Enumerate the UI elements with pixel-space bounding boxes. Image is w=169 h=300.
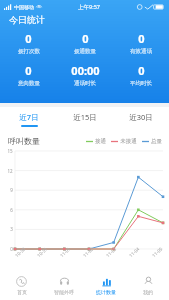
staticText: 0 xyxy=(25,31,32,46)
staticText: 00:00 xyxy=(71,63,100,78)
staticText: 拨打次数 xyxy=(18,48,40,55)
staticText: 6 xyxy=(10,207,13,213)
staticText: 9 xyxy=(10,187,13,193)
staticText: 我的 xyxy=(143,289,153,295)
staticText: 总量 xyxy=(151,138,162,145)
staticText: 今日统计 xyxy=(9,14,45,25)
staticText: 15 xyxy=(7,148,13,154)
staticText: 平均时长 xyxy=(130,80,152,87)
button[interactable]: 首页 xyxy=(0,270,43,300)
staticText: 意向数量 xyxy=(18,80,40,87)
staticText: 上午9:57 xyxy=(78,3,100,11)
staticText: 未接通 xyxy=(120,138,137,145)
staticText: 0 xyxy=(25,63,32,78)
button[interactable]: 智能外呼 xyxy=(43,270,85,300)
staticText: 中国移动 xyxy=(14,4,34,10)
staticText: 0 xyxy=(138,63,145,78)
button[interactable]: 近15日 xyxy=(57,107,113,132)
button[interactable]: 近7日 xyxy=(0,107,57,132)
staticText: 10-30 xyxy=(13,246,26,258)
staticText: 11-01 xyxy=(58,246,71,258)
staticText: 3 xyxy=(10,226,13,232)
staticText: 通话时长 xyxy=(74,80,96,87)
staticText: 有效通话 xyxy=(130,48,152,55)
staticText: 11-03 xyxy=(104,246,117,258)
staticText: 0 xyxy=(10,246,13,252)
staticText: 拨通数量 xyxy=(74,48,96,55)
staticText: 智能外呼 xyxy=(54,289,74,295)
staticText: 首页 xyxy=(17,289,27,295)
staticText: 近30日 xyxy=(129,112,153,122)
staticText: 统计数量 xyxy=(96,289,116,295)
staticText: 11-05 xyxy=(150,246,163,258)
staticText: 近15日 xyxy=(73,112,97,122)
staticText: 11-02 xyxy=(81,246,94,258)
staticText: 呼叫数量 xyxy=(8,136,40,146)
staticText: 接通 xyxy=(95,138,106,145)
staticText: 12 xyxy=(7,168,13,174)
staticText: 11-04 xyxy=(127,246,140,258)
staticText: 近7日 xyxy=(19,112,39,122)
staticText: 10-31 xyxy=(35,246,48,258)
button[interactable]: 近30日 xyxy=(113,107,169,132)
button[interactable]: 我的 xyxy=(127,270,169,300)
button[interactable]: 统计数量 xyxy=(85,270,127,300)
staticText: 0 xyxy=(82,31,89,46)
staticText: 0 xyxy=(138,31,145,46)
